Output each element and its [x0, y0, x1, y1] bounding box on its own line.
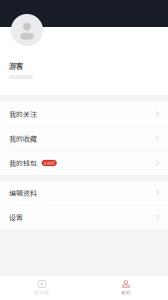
staticText: 我的 [121, 289, 131, 296]
button[interactable]: 我的关注 [0, 102, 168, 126]
staticText: 0.00元 [44, 160, 55, 166]
staticText: 我的收藏 [9, 133, 37, 143]
staticText: 我的关注 [9, 109, 37, 119]
staticText: 游客 [9, 60, 23, 71]
button[interactable]: 我的钱包 [0, 151, 168, 175]
staticText: 88888888 [9, 74, 33, 80]
staticText: 短视频 [34, 289, 49, 296]
staticText: 我的钱包 [9, 158, 37, 168]
staticText: 编辑资料 [9, 188, 37, 198]
button[interactable]: 编辑资料 [0, 181, 168, 205]
button[interactable]: 我的 [84, 276, 168, 300]
button[interactable]: 设置 [0, 205, 168, 229]
button[interactable]: 短视频 [0, 276, 84, 300]
button[interactable]: 我的收藏 [0, 126, 168, 150]
staticText: 设置 [9, 212, 23, 222]
